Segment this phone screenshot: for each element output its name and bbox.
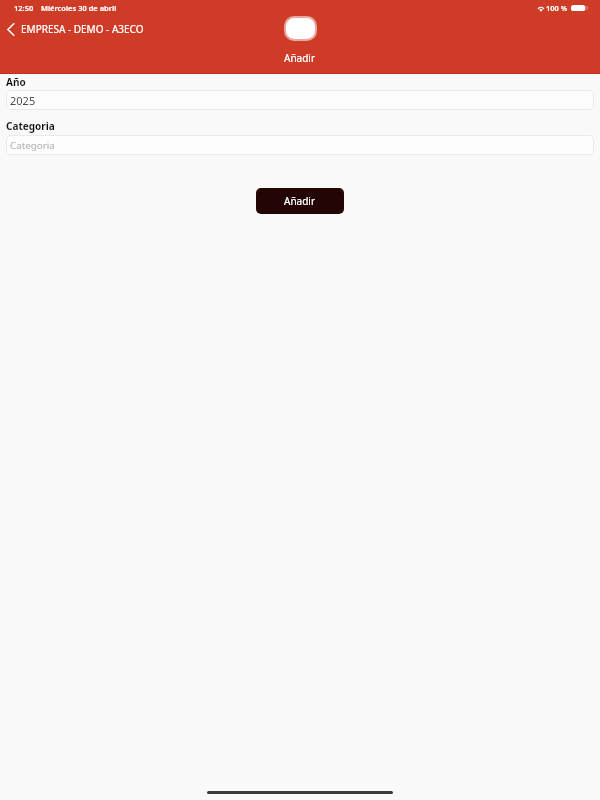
button[interactable]: Categoria bbox=[6, 135, 594, 155]
staticText: 2025 bbox=[10, 93, 36, 108]
button[interactable]: Back bbox=[0, 21, 152, 37]
staticText: Añadir bbox=[284, 194, 316, 208]
button[interactable]: Añadir bbox=[256, 188, 344, 214]
staticText: Categoria bbox=[6, 119, 55, 133]
staticText: Añadir bbox=[284, 51, 316, 65]
button[interactable]: Añadir bbox=[270, 16, 330, 66]
other: Back bbox=[7, 23, 15, 36]
other: Wi-Fi bbox=[537, 5, 545, 11]
other: Battery bbox=[571, 4, 587, 12]
staticText: 100 % bbox=[546, 3, 568, 13]
staticText: EMPRESA - DEMO - A3ECO bbox=[21, 22, 144, 36]
staticText: Categoria bbox=[10, 139, 55, 152]
button[interactable]: 2025 bbox=[6, 90, 594, 110]
staticText: Año bbox=[6, 75, 26, 89]
staticText: Miércoles 30 de abril bbox=[41, 3, 117, 13]
staticText: 12:50 bbox=[14, 3, 34, 13]
